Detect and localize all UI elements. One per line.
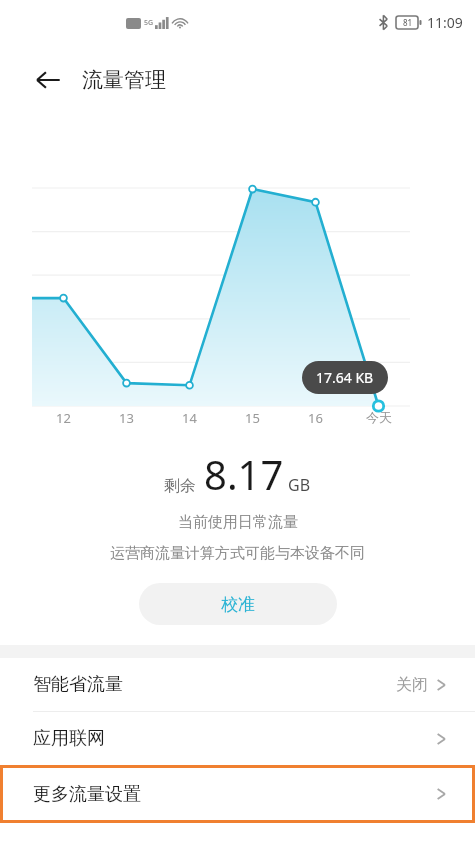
button[interactable]: 智能省流量 — [0, 658, 475, 712]
staticText: 当前使用日常流量 — [178, 513, 298, 532]
staticText: 13 — [119, 409, 134, 427]
staticText: 15 — [245, 409, 260, 427]
staticText: 14 — [182, 409, 197, 427]
staticText: 更多流量设置 — [33, 783, 141, 806]
staticText: GB — [288, 474, 311, 496]
staticText: 应用联网 — [33, 727, 105, 750]
staticText: 5G — [144, 18, 154, 28]
button[interactable]: 应用联网 — [0, 712, 475, 765]
staticText: 12 — [56, 409, 71, 427]
staticText: 流量管理 — [82, 67, 166, 93]
staticText: 81 — [403, 17, 413, 28]
button[interactable]: Back — [26, 58, 70, 102]
button[interactable]: 更多流量设置 — [0, 765, 475, 823]
staticText: 16 — [308, 409, 323, 427]
staticText: 今天 — [366, 409, 392, 425]
staticText: 11:09 — [427, 13, 463, 32]
staticText: 8.17 — [204, 447, 284, 501]
button[interactable]: 校准 — [139, 583, 337, 625]
staticText: 17.64 KB — [316, 368, 374, 387]
staticText: 关闭 — [396, 675, 428, 695]
staticText: 运营商流量计算方式可能与本设备不同 — [110, 544, 365, 563]
staticText: 智能省流量 — [33, 673, 123, 696]
staticText: 校准 — [221, 594, 255, 615]
staticText: 剩余 — [164, 476, 196, 496]
